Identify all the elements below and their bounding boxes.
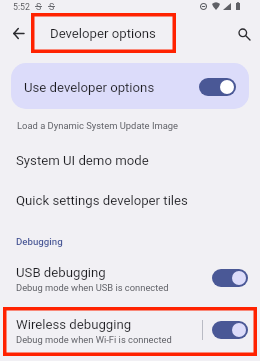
button[interactable] xyxy=(0,312,260,348)
staticText: Use developer options xyxy=(24,80,155,95)
staticText: S xyxy=(36,2,42,12)
staticText: S xyxy=(49,2,55,12)
staticText: Debug mode when Wi-Fi is connected xyxy=(16,334,172,345)
button[interactable]: Toggle on xyxy=(212,321,248,339)
button[interactable] xyxy=(0,114,260,132)
button[interactable] xyxy=(0,260,260,296)
button[interactable]: Search xyxy=(229,19,260,50)
staticText: 5:52 xyxy=(13,2,30,12)
staticText: Wireless debugging xyxy=(16,317,132,332)
staticText: USB debugging xyxy=(16,265,106,280)
staticText: System UI demo mode xyxy=(16,153,149,168)
staticText: Debug mode when USB is connected xyxy=(16,282,169,293)
staticText: Load a Dynamic System Update Image xyxy=(17,120,179,131)
button[interactable]: Back xyxy=(3,18,34,49)
button[interactable] xyxy=(0,146,260,172)
button[interactable] xyxy=(11,63,249,109)
staticText: Developer options xyxy=(50,26,156,41)
staticText: Quick settings developer tiles xyxy=(16,193,188,208)
staticText: Debugging xyxy=(16,236,63,247)
button[interactable]: Toggle on xyxy=(199,78,236,96)
button[interactable] xyxy=(0,186,260,212)
button[interactable]: Toggle on xyxy=(212,269,248,287)
